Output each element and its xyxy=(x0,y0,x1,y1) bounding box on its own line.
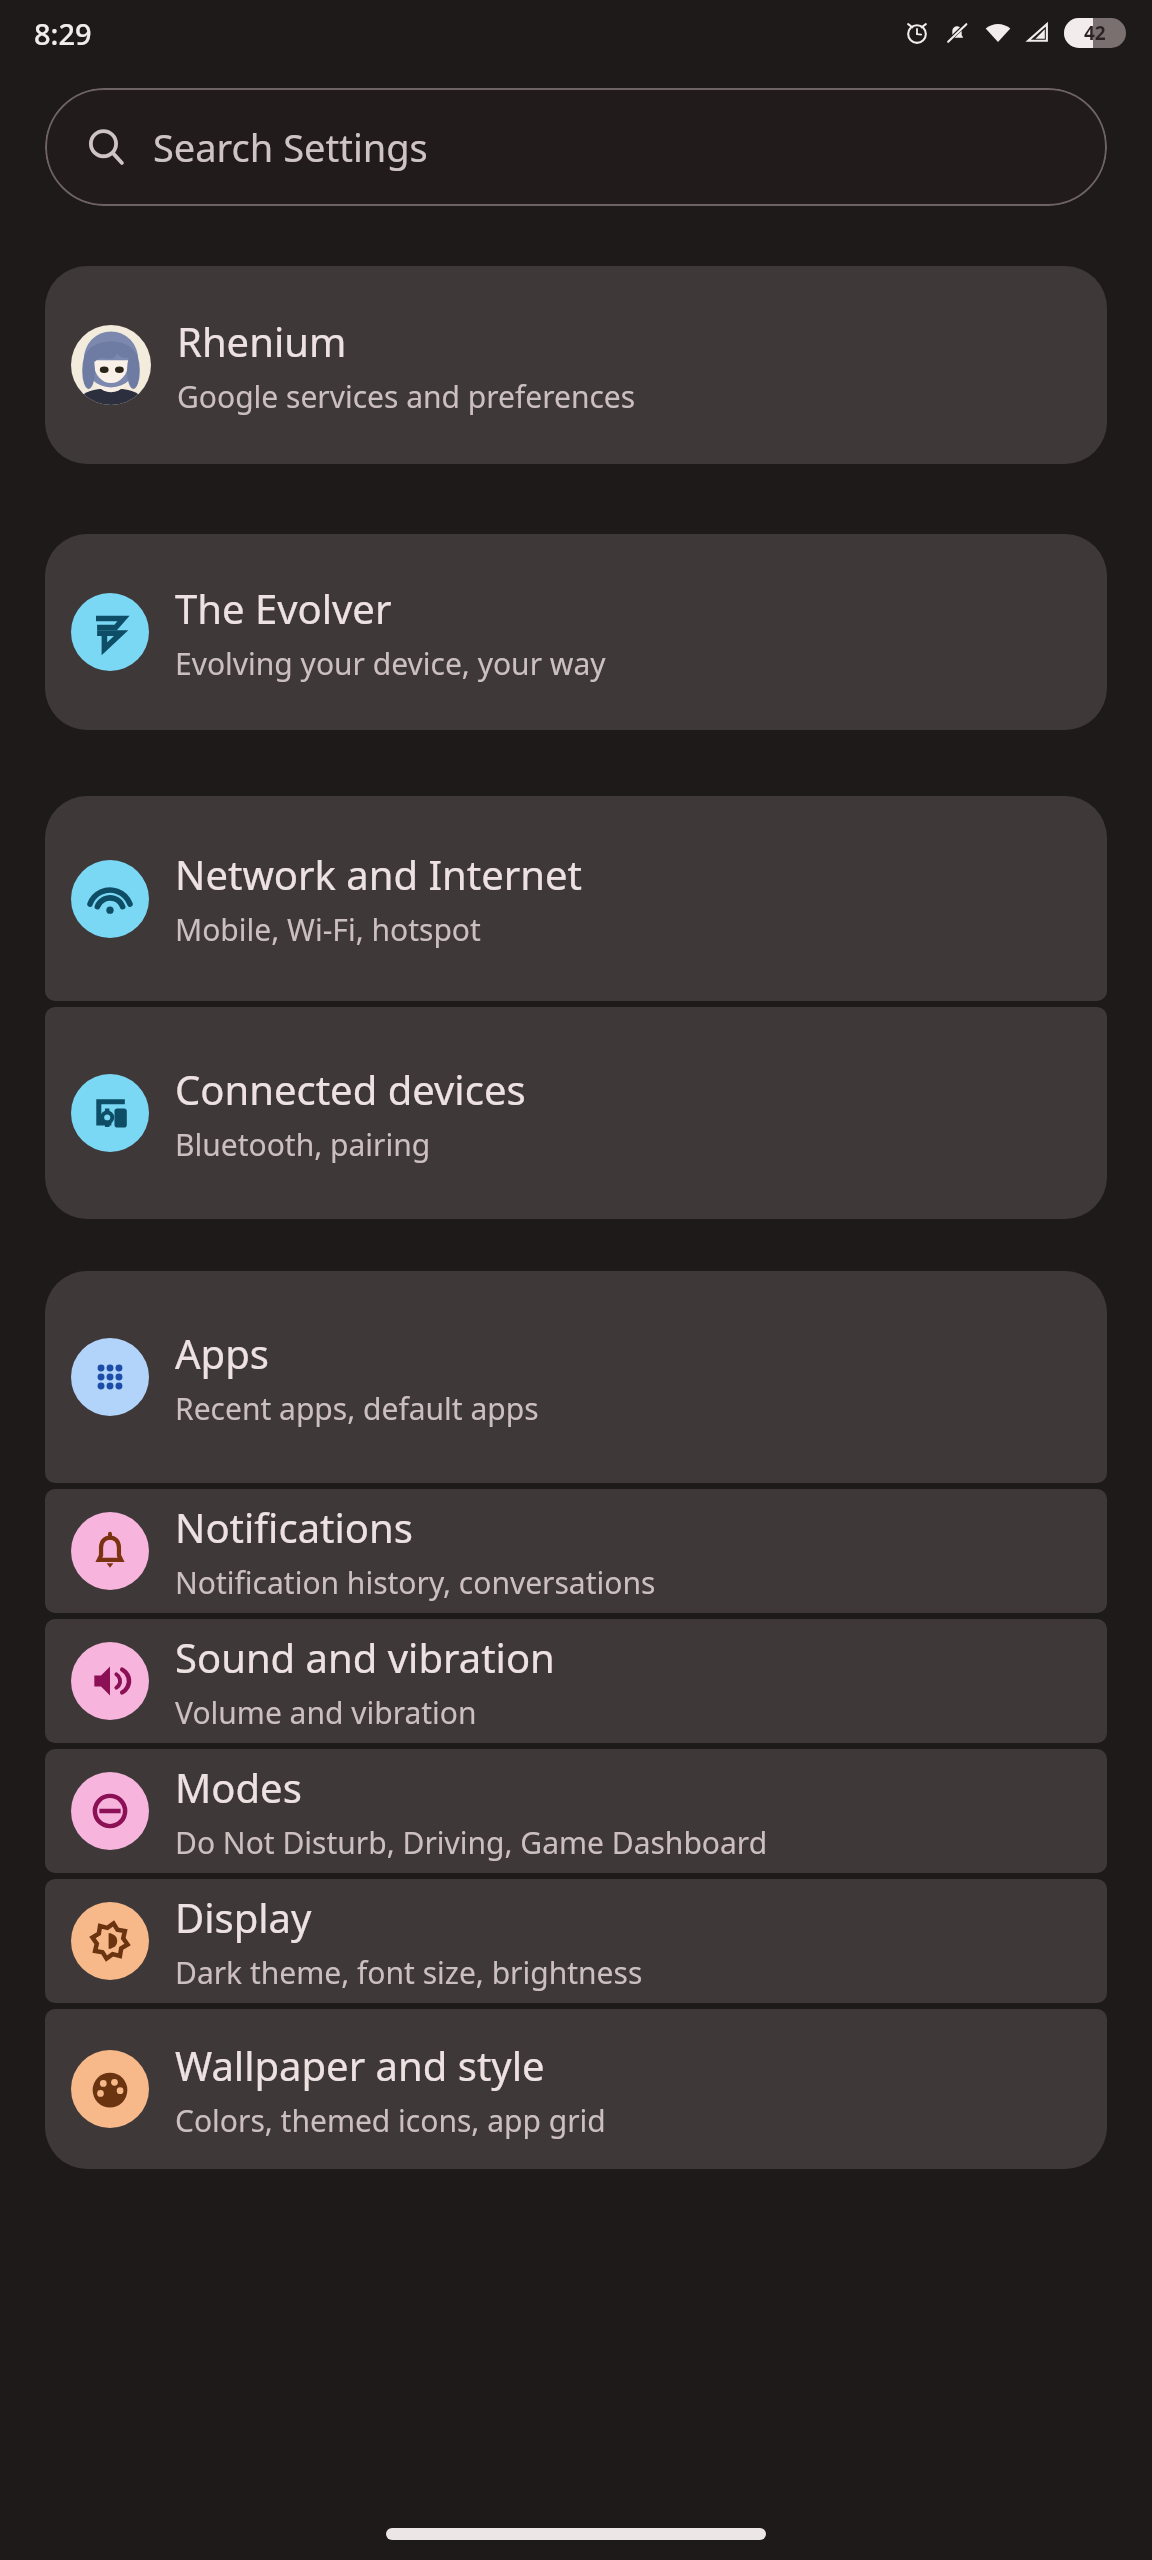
staticText: Connected devices xyxy=(175,1062,526,1116)
staticText: Recent apps, default apps xyxy=(175,1388,539,1429)
button[interactable]: Apps xyxy=(45,1271,1107,1483)
button[interactable]: Notifications xyxy=(45,1489,1107,1613)
staticText: Volume and vibration xyxy=(175,1692,477,1733)
button[interactable]: Wallpaper and style xyxy=(45,2009,1107,2169)
button[interactable]: Display xyxy=(45,1879,1107,2003)
staticText: Rhenium xyxy=(177,314,347,368)
button[interactable]: Connected devices xyxy=(45,1007,1107,1219)
staticText: Apps xyxy=(175,1326,269,1380)
staticText: Bluetooth, pairing xyxy=(175,1124,431,1165)
staticText: Notifications xyxy=(175,1500,413,1554)
staticText: Mobile, Wi-Fi, hotspot xyxy=(175,909,481,950)
staticText: The Evolver xyxy=(175,581,392,635)
staticText: Display xyxy=(175,1890,312,1944)
staticText: Network and Internet xyxy=(175,847,582,901)
staticText: Dark theme, font size, brightness xyxy=(175,1952,643,1993)
button[interactable]: The Evolver xyxy=(45,534,1107,730)
button[interactable]: Network and Internet xyxy=(45,796,1107,1001)
staticText: Colors, themed icons, app grid xyxy=(175,2100,606,2141)
button[interactable]: Sound and vibration xyxy=(45,1619,1107,1743)
button[interactable]: Modes xyxy=(45,1749,1107,1873)
staticText: Evolving your device, your way xyxy=(175,643,606,684)
staticText: Google services and preferences xyxy=(177,376,636,417)
staticText: Do Not Disturb, Driving, Game Dashboard xyxy=(175,1822,768,1863)
staticText: Wallpaper and style xyxy=(175,2038,545,2092)
staticText: Search Settings xyxy=(153,121,428,173)
staticText: Notification history, conversations xyxy=(175,1562,656,1603)
staticText: 8:29 xyxy=(34,14,92,53)
staticText: Modes xyxy=(175,1760,302,1814)
button[interactable]: Rhenium xyxy=(45,266,1107,464)
staticText: 42 xyxy=(1084,20,1106,46)
button[interactable]: Search Settings xyxy=(45,88,1107,206)
staticText: Sound and vibration xyxy=(175,1630,555,1684)
